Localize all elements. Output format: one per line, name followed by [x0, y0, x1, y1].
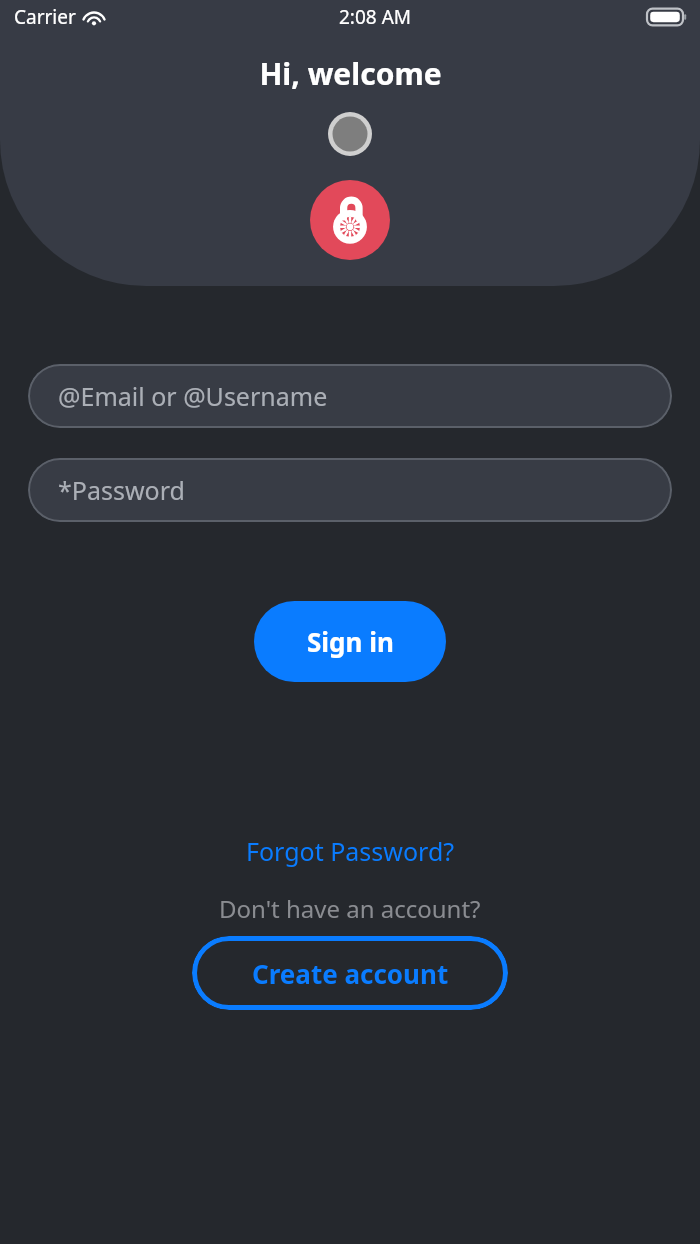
button[interactable]: @Email or @Username — [28, 364, 672, 428]
button[interactable]: Unlock — [310, 180, 390, 260]
staticText: Carrier — [14, 4, 76, 30]
button[interactable]: Sign in — [254, 601, 446, 682]
button[interactable]: Forgot Password? — [240, 828, 461, 874]
staticText: *Password — [58, 473, 185, 507]
staticText: Forgot Password? — [246, 834, 455, 868]
staticText: Hi, welcome — [259, 53, 442, 94]
staticText: Don't have an account? — [219, 892, 481, 925]
staticText: Create account — [252, 956, 449, 991]
staticText: 2:08 AM — [339, 4, 412, 30]
button[interactable]: Create account — [192, 936, 508, 1010]
button[interactable]: *Password — [28, 458, 672, 522]
staticText: Sign in — [307, 624, 394, 659]
staticText: @Email or @Username — [58, 379, 328, 413]
